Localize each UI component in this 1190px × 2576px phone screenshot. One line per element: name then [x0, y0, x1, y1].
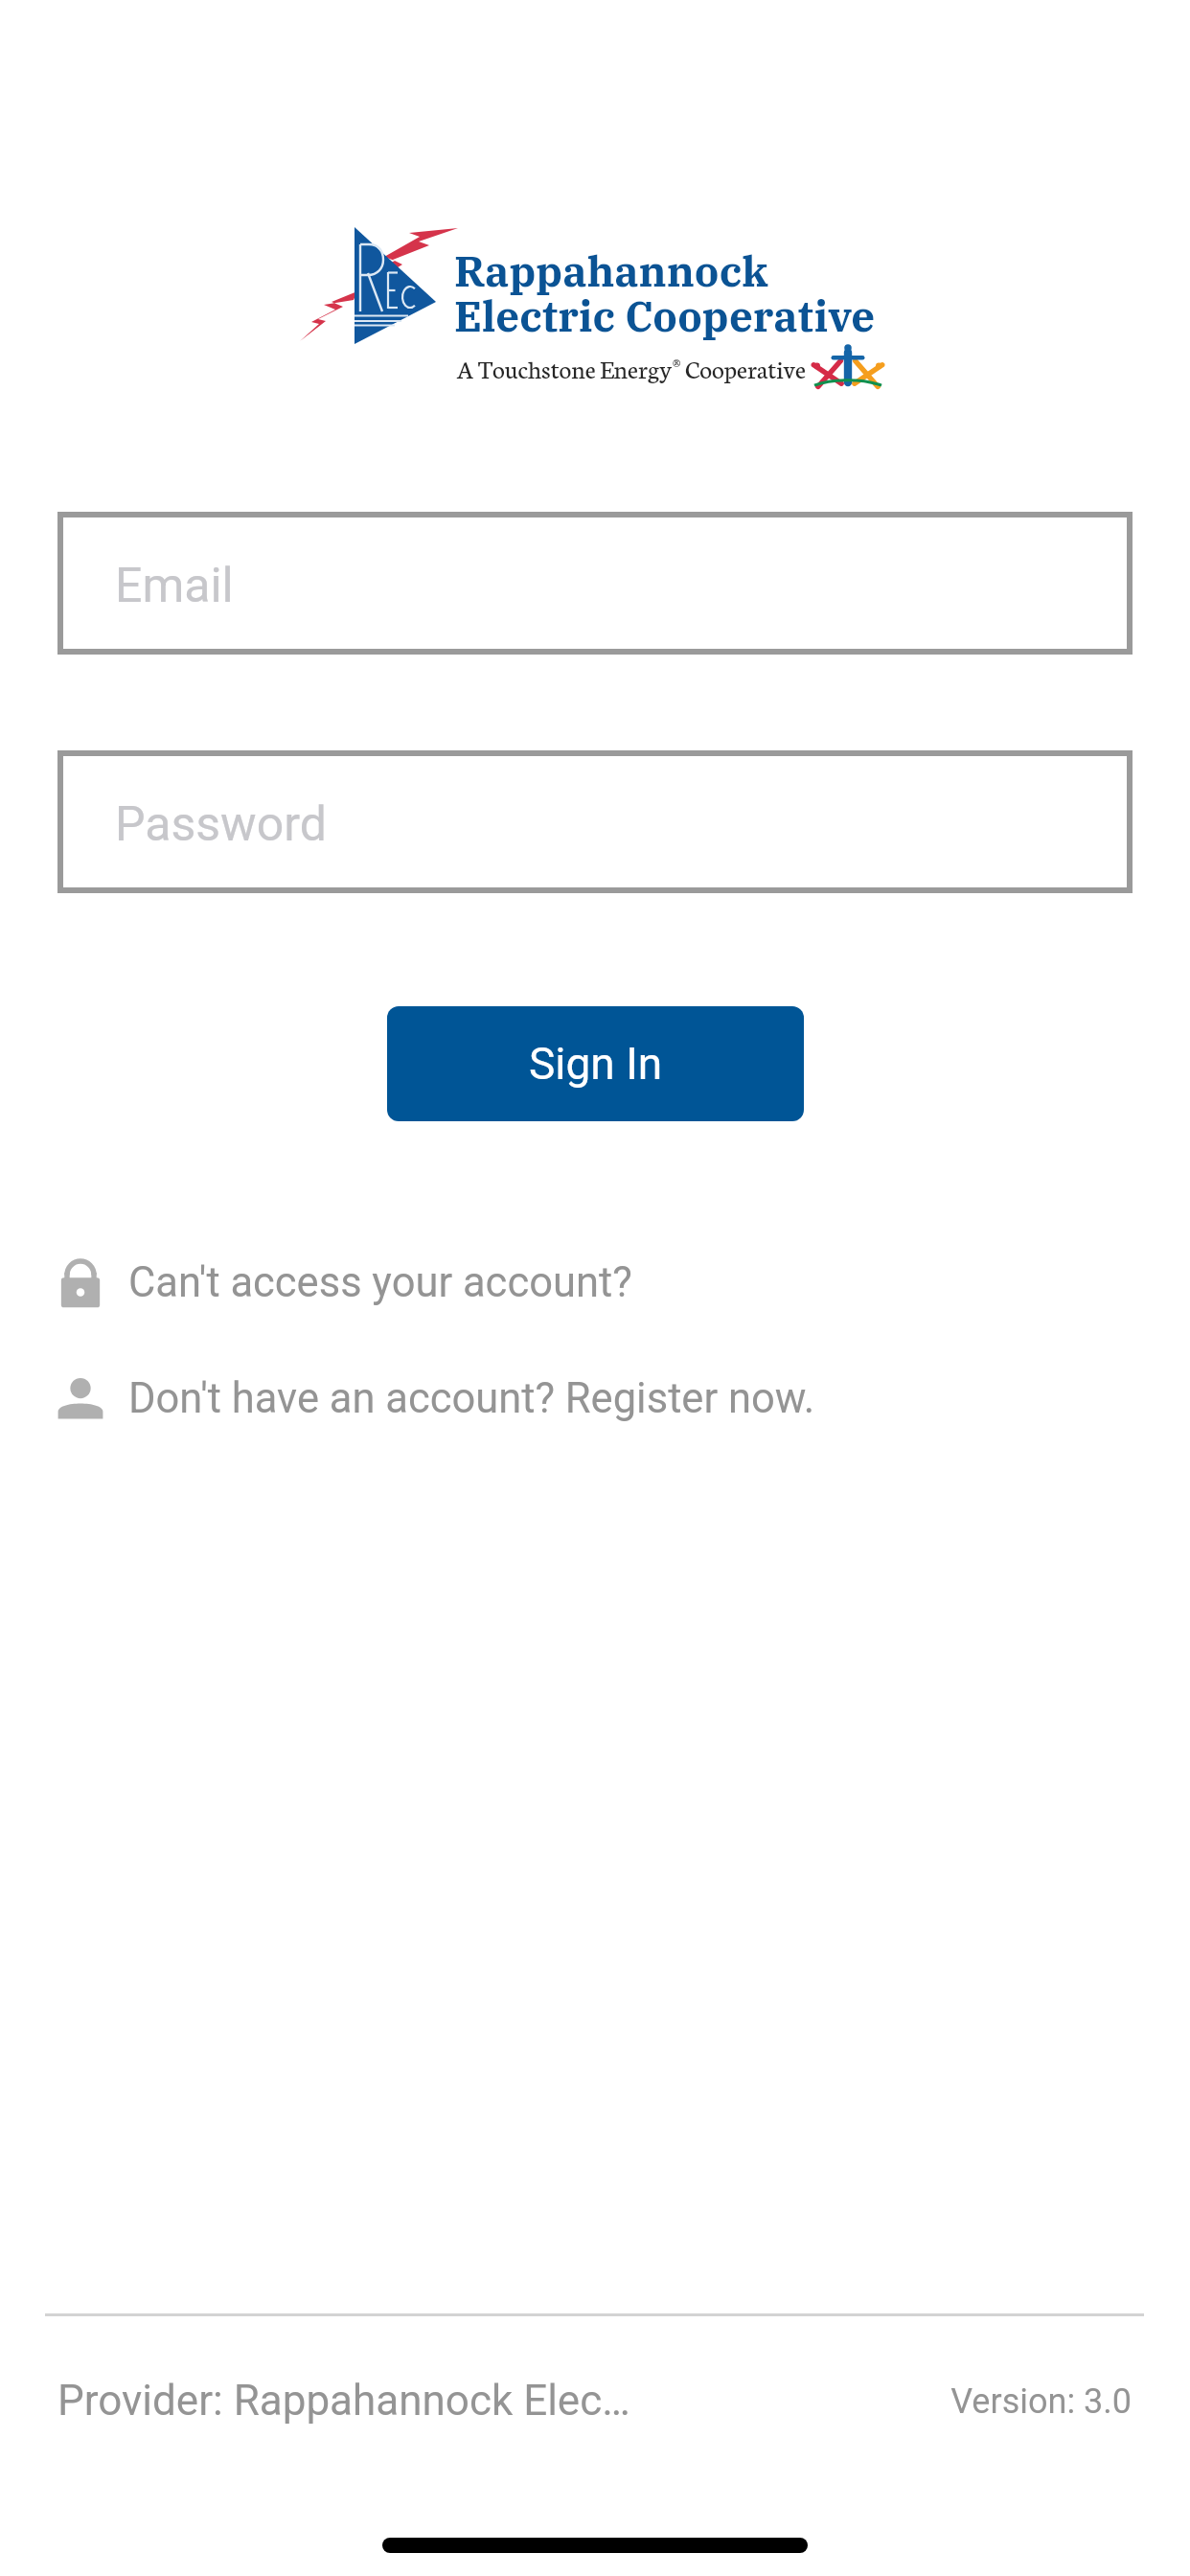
button[interactable]: Don't have an account? Register now. [46, 1357, 815, 1439]
staticText: Sign In [529, 1038, 663, 1090]
button[interactable]: Can't access your account? [46, 1241, 632, 1323]
staticText: Rappahannock [454, 243, 768, 298]
staticText: A Touchstone Energy® Cooperative [457, 351, 806, 384]
staticText: Electric Cooperative [454, 288, 876, 343]
staticText: Provider: Rappahannock Elec… [57, 2376, 630, 2426]
staticText: Don't have an account? Register now. [128, 1374, 815, 1423]
staticText: Password [115, 796, 327, 853]
button[interactable]: Email [57, 512, 1133, 655]
staticText: Email [115, 558, 234, 614]
staticText: Version: 3.0 [950, 2381, 1132, 2422]
staticText: Can't access your account? [128, 1258, 632, 1307]
button[interactable]: Password [57, 750, 1133, 893]
button[interactable]: Sign In [387, 1006, 804, 1121]
